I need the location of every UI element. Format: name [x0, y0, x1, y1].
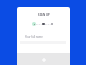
staticText: SIGN UP: [38, 13, 50, 17]
staticText: Your full name: [25, 35, 43, 39]
